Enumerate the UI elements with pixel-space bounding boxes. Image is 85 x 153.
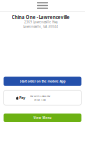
staticText: Start order on the mobile App <box>19 79 65 83</box>
staticText: Lawrenceville, GA 30044 <box>23 25 58 29</box>
staticText: View Menu <box>33 116 51 120</box>
button[interactable]: Menu <box>0 0 85 11</box>
button[interactable]: Start order on the mobile App <box>4 77 81 86</box>
staticText: Pay <box>19 95 25 100</box>
staticText: 2369 Lawrenceville Hwy <box>24 20 57 24</box>
staticText: on our App! <box>34 98 46 101</box>
staticText: Pay with Apple Pay <box>30 94 50 97</box>
button[interactable]: View Menu <box>4 113 81 122</box>
staticText: China One - Lawrenceville <box>12 14 70 20</box>
